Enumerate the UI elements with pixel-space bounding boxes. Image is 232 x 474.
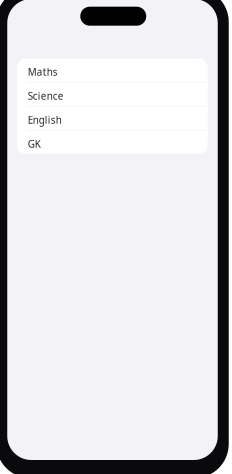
button[interactable]: Science bbox=[17, 83, 208, 107]
staticText: Maths bbox=[28, 65, 58, 79]
button[interactable]: English bbox=[17, 107, 208, 131]
staticText: Science bbox=[28, 89, 64, 103]
button[interactable]: Maths bbox=[17, 59, 208, 83]
staticText: GK bbox=[28, 137, 41, 150]
button[interactable]: GK bbox=[17, 131, 208, 154]
staticText: English bbox=[28, 113, 62, 127]
